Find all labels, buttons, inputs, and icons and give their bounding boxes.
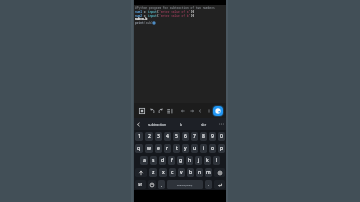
staticText: d: [161, 157, 165, 164]
button[interactable]: k: [204, 156, 211, 165]
staticText: s: [152, 157, 155, 164]
button[interactable]: Emoji: [148, 180, 156, 189]
staticText: "enter value of a": [159, 10, 191, 14]
button[interactable]: b: [187, 168, 194, 177]
button[interactable]: i: [200, 144, 207, 153]
staticText: k: [206, 157, 209, 164]
staticText: b: [189, 169, 193, 176]
button[interactable]: 0: [218, 132, 225, 141]
button[interactable]: Expand toolbar: [134, 118, 143, 130]
button[interactable]: Move right: [190, 109, 194, 113]
button[interactable]: 4: [164, 132, 171, 141]
button[interactable]: c: [169, 168, 176, 177]
button[interactable]: More suggestions: [216, 118, 226, 130]
button[interactable]: w: [145, 144, 153, 153]
staticText: sub=a-b: [135, 17, 148, 21]
staticText: c: [171, 169, 174, 176]
button[interactable]: Indent: [167, 108, 173, 114]
button[interactable]: 9: [209, 132, 216, 141]
button[interactable]: a: [140, 156, 148, 165]
staticText: input: [148, 10, 157, 14]
staticText: v: [180, 169, 183, 176]
button[interactable]: .: [205, 180, 212, 189]
button[interactable]: y: [182, 144, 189, 153]
staticText: num1: [135, 10, 142, 14]
button[interactable]: s: [150, 156, 157, 165]
button[interactable]: Redo: [158, 108, 163, 113]
button[interactable]: v: [178, 168, 185, 177]
button[interactable]: 1: [135, 132, 143, 141]
button[interactable]: q: [135, 144, 143, 153]
button[interactable]: Run: [212, 105, 224, 117]
staticText: 5: [175, 133, 178, 140]
button[interactable]: Move left: [181, 109, 185, 113]
staticText: a: [143, 157, 146, 164]
button[interactable]: subtraction: [143, 118, 171, 130]
button[interactable]: sbr: [192, 118, 216, 130]
button[interactable]: p: [218, 144, 225, 153]
button[interactable]: English(India): [167, 180, 203, 189]
button[interactable]: 8: [200, 132, 207, 141]
staticText: u: [193, 145, 197, 152]
staticText: 7: [193, 133, 196, 140]
button[interactable]: Collapse: [198, 109, 202, 113]
staticText: 2: [148, 133, 151, 140]
button[interactable]: More options: [207, 109, 211, 113]
staticText: m: [206, 169, 211, 176]
staticText: 9: [211, 133, 214, 140]
staticText: l: [216, 157, 218, 164]
staticText: English(India): [177, 183, 193, 186]
button[interactable]: r: [164, 144, 171, 153]
staticText: h: [188, 157, 192, 164]
staticText: =: [142, 14, 148, 18]
staticText: ,: [161, 182, 162, 187]
staticText: b: [180, 122, 183, 127]
button[interactable]: Select all: [139, 108, 145, 114]
button[interactable]: 2: [145, 132, 153, 141]
button[interactable]: u: [191, 144, 198, 153]
staticText: z: [152, 169, 155, 176]
button[interactable]: 7: [191, 132, 198, 141]
button[interactable]: e: [155, 144, 162, 153]
button[interactable]: n: [196, 168, 203, 177]
staticText: num2: [135, 14, 142, 18]
button[interactable]: 3: [155, 132, 162, 141]
staticText: 4: [166, 133, 169, 140]
button[interactable]: !#1: [135, 180, 146, 189]
button[interactable]: t: [173, 144, 180, 153]
staticText: o: [211, 145, 215, 152]
button[interactable]: h: [186, 156, 193, 165]
staticText: t: [176, 145, 178, 152]
button[interactable]: d: [159, 156, 166, 165]
button[interactable]: j: [195, 156, 202, 165]
staticText: (: [157, 10, 159, 14]
staticText: 3: [157, 133, 160, 140]
button[interactable]: f: [168, 156, 175, 165]
staticText: w: [147, 145, 151, 152]
staticText: )): [191, 10, 195, 14]
button[interactable]: x: [159, 168, 167, 177]
button[interactable]: Backspace: [214, 168, 225, 177]
staticText: g: [179, 157, 183, 164]
button[interactable]: ,: [158, 180, 165, 189]
staticText: 8: [202, 133, 205, 140]
button[interactable]: g: [177, 156, 184, 165]
staticText: #Python program for subtraction of two n…: [135, 6, 215, 10]
button[interactable]: 5: [173, 132, 180, 141]
staticText: =: [142, 10, 148, 14]
button[interactable]: b: [171, 118, 192, 130]
button[interactable]: z: [149, 168, 157, 177]
button[interactable]: o: [209, 144, 216, 153]
staticText: j: [198, 157, 200, 164]
button[interactable]: Undo: [150, 108, 155, 113]
button[interactable]: Shift: [135, 168, 147, 177]
staticText: p: [220, 145, 224, 152]
button[interactable]: l: [213, 156, 220, 165]
staticText: 0: [220, 133, 223, 140]
staticText: )): [191, 14, 195, 18]
button[interactable]: Enter: [214, 180, 225, 189]
staticText: (sub): [144, 21, 153, 25]
button[interactable]: m: [205, 168, 212, 177]
staticText: i: [203, 145, 205, 152]
button[interactable]: 6: [182, 132, 189, 141]
